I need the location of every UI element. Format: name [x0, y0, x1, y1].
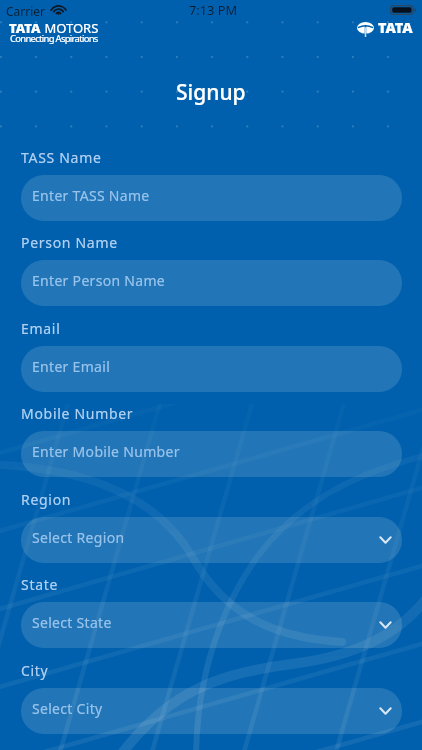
- staticText: State: [21, 575, 59, 594]
- button[interactable]: Select State: [21, 602, 402, 648]
- button[interactable]: Enter Email: [21, 346, 402, 392]
- staticText: Select State: [32, 613, 112, 632]
- staticText: TATA: [9, 19, 41, 37]
- staticText: Mobile Number: [21, 404, 134, 423]
- staticText: Email: [21, 319, 61, 338]
- staticText: Enter Mobile Number: [32, 442, 180, 461]
- staticText: Person Name: [21, 233, 118, 252]
- staticText: Enter Person Name: [32, 271, 166, 290]
- staticText: Carrier: [6, 3, 46, 19]
- button[interactable]: Select Region: [21, 517, 402, 563]
- other: Open State list: [379, 621, 392, 629]
- staticText: TATA: [378, 18, 413, 37]
- staticText: Select Region: [32, 528, 125, 547]
- staticText: Signup: [176, 78, 246, 107]
- staticText: 7:13 PM: [189, 1, 238, 18]
- staticText: Select City: [32, 699, 103, 718]
- button[interactable]: Select City: [21, 688, 402, 734]
- button[interactable]: Enter Person Name: [21, 260, 402, 306]
- staticText: City: [21, 661, 49, 680]
- staticText: Connecting Aspirations: [10, 32, 98, 45]
- button[interactable]: Enter Mobile Number: [21, 431, 402, 477]
- staticText: TASS Name: [21, 148, 102, 167]
- button[interactable]: Enter TASS Name: [21, 175, 402, 221]
- staticText: Enter Email: [32, 357, 111, 376]
- staticText: Enter TASS Name: [32, 186, 150, 205]
- other: Open Region list: [379, 536, 392, 544]
- other: Open City list: [379, 707, 392, 715]
- staticText: Region: [21, 490, 72, 509]
- staticText: MOTORS: [41, 19, 99, 37]
